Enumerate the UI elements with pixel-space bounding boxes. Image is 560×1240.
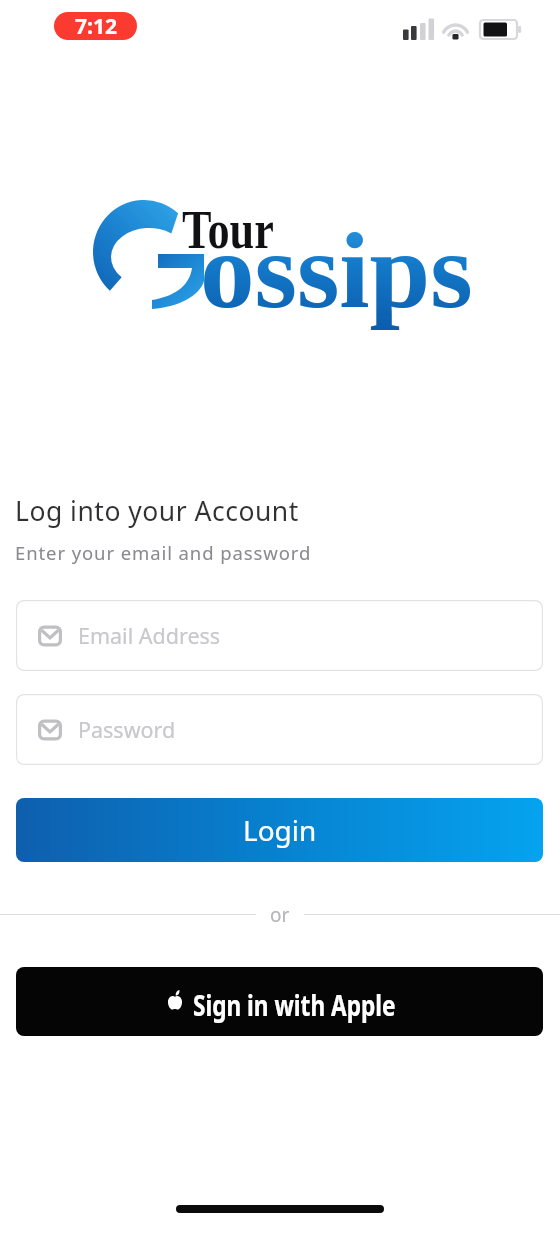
staticText: Login [243,811,317,849]
button[interactable]: Password [16,694,543,765]
staticText: or [270,902,290,926]
button[interactable]: Login [16,798,543,862]
button[interactable]: Email Address [16,600,543,671]
staticText: Email Address [78,621,221,650]
staticText: Log into your Account [15,493,299,529]
staticText: ossips [200,212,474,331]
staticText: 7:12 [75,12,117,40]
staticText: Password [78,715,176,744]
staticText: Sign in with Apple [193,985,396,1024]
staticText: Enter your email and password [15,540,312,565]
button[interactable]: Sign in with Apple [16,967,543,1036]
staticText: Tour [182,200,275,260]
